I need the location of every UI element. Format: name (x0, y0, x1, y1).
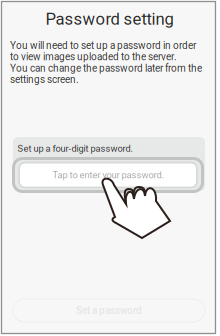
staticText: Set up a four-digit password. (17, 143, 132, 154)
staticText: settings screen. (10, 74, 79, 85)
staticText: Set a password (76, 305, 142, 316)
staticText: You can change the password later from t… (10, 62, 202, 74)
button[interactable]: Set a password (13, 299, 205, 322)
staticText: to view images uploaded to the server. (10, 51, 177, 63)
staticText: Password setting (45, 9, 173, 29)
staticText: You will need to set up a password in or… (10, 40, 196, 51)
staticText: Tap to enter your password. (52, 169, 163, 180)
button[interactable]: Tap to enter your password. (11, 156, 205, 194)
